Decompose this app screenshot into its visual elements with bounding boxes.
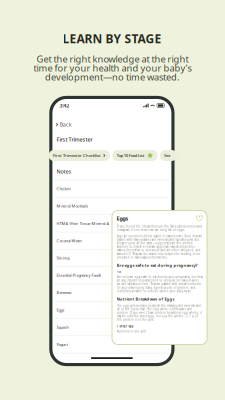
staticText: Back [60, 121, 72, 128]
staticText: Mineral Mocktails [56, 203, 88, 209]
staticText: time for your health and your baby's [33, 62, 191, 74]
staticText: Nutrient Breakdown of Eggs [116, 296, 174, 302]
staticText: Nutrients in the yolk [116, 330, 145, 333]
staticText: Notes [56, 168, 71, 175]
button[interactable]: Shrimp [52, 249, 171, 267]
staticText: See [164, 153, 170, 158]
button[interactable]: Top 10 Food List [112, 150, 158, 161]
button[interactable]: Bananas [52, 284, 171, 301]
staticText: HTMA (Hair Tissue Mineral A [56, 221, 109, 226]
staticText: Essential Pregnancy Foods [56, 273, 101, 278]
staticText: Get the right knowledge at the right [36, 53, 188, 65]
staticText: development—no time wasted. [45, 71, 180, 83]
staticText: Coconut Water [56, 238, 82, 243]
button[interactable]: Notes [52, 163, 171, 180]
staticText: Not only are eggs safe to eat during you… [116, 275, 202, 293]
button[interactable]: First Trimester Checklist [49, 150, 110, 161]
staticText: First Trimester Checklist [53, 153, 101, 158]
staticText: Squash [56, 324, 68, 330]
staticText: LEARN BY STAGE [62, 30, 161, 46]
staticText: Yogurt [56, 342, 67, 347]
staticText: 3:42 [59, 102, 69, 109]
staticText: Are eggs safe to eat during pregnancy? [116, 263, 197, 268]
button[interactable]: HTMA (Hair Tissue Mineral A [52, 215, 171, 232]
staticText: Shrimp [56, 255, 69, 261]
button[interactable]: Yogurt [52, 336, 171, 353]
button[interactable]: Coconut Water [52, 232, 171, 249]
staticText: Bananas [56, 290, 71, 295]
button[interactable]: See [160, 150, 177, 161]
button[interactable]: Eggs [52, 301, 171, 319]
button[interactable]: Back [52, 121, 171, 128]
staticText: YES! [116, 270, 121, 274]
button[interactable]: Essential Pregnancy Foods [52, 267, 171, 284]
staticText: Eggs are a nutrient-dense staple in many… [116, 234, 202, 259]
button[interactable]: Squash [52, 319, 171, 336]
staticText: If you found the library through the @pl… [117, 225, 202, 232]
staticText: Top 10 Food List [117, 153, 145, 158]
button[interactable]: Chicken [52, 180, 171, 198]
staticText: The egg yolk contains nearly all the vit… [117, 304, 202, 321]
staticText: Eggs [116, 215, 128, 222]
staticText: 1 Large Egg [116, 324, 133, 328]
staticText: Eggs [56, 307, 64, 312]
staticText: First Trimester [56, 136, 92, 143]
button[interactable]: Mineral Mocktails [52, 198, 171, 215]
staticText: Chicken [56, 186, 70, 191]
